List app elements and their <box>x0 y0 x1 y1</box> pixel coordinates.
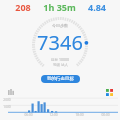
staticText: 我的行走目标 <box>47 76 74 82</box>
staticText: 06:00 <box>24 113 33 117</box>
staticText: 2000 <box>3 98 11 102</box>
staticText: 1000 <box>3 105 11 109</box>
staticText: 目标 10000 <box>51 57 69 62</box>
staticText: 18:00 <box>75 113 84 117</box>
staticText: 等级 达人 <box>53 62 68 67</box>
button[interactable]: 208 <box>6 0 39 14</box>
button[interactable]: 我的行走目标 <box>41 75 80 83</box>
staticText: 今日步数 <box>52 23 68 28</box>
button[interactable]: 2000 <box>0 97 120 119</box>
staticText: 1h 35m <box>43 1 76 13</box>
staticText: 00:00 <box>101 113 110 117</box>
staticText: 4.84 <box>88 1 106 13</box>
button[interactable]: Statistics <box>6 87 16 97</box>
button[interactable]: 今日步数 <box>31 16 89 74</box>
button[interactable]: 1h 35m <box>39 0 80 14</box>
button[interactable]: Apps <box>104 87 114 97</box>
staticText: 208 <box>15 1 31 13</box>
button[interactable]: 4.84 <box>80 0 114 14</box>
staticText: 7346 <box>37 29 83 56</box>
staticText: 12:00 <box>49 113 58 117</box>
